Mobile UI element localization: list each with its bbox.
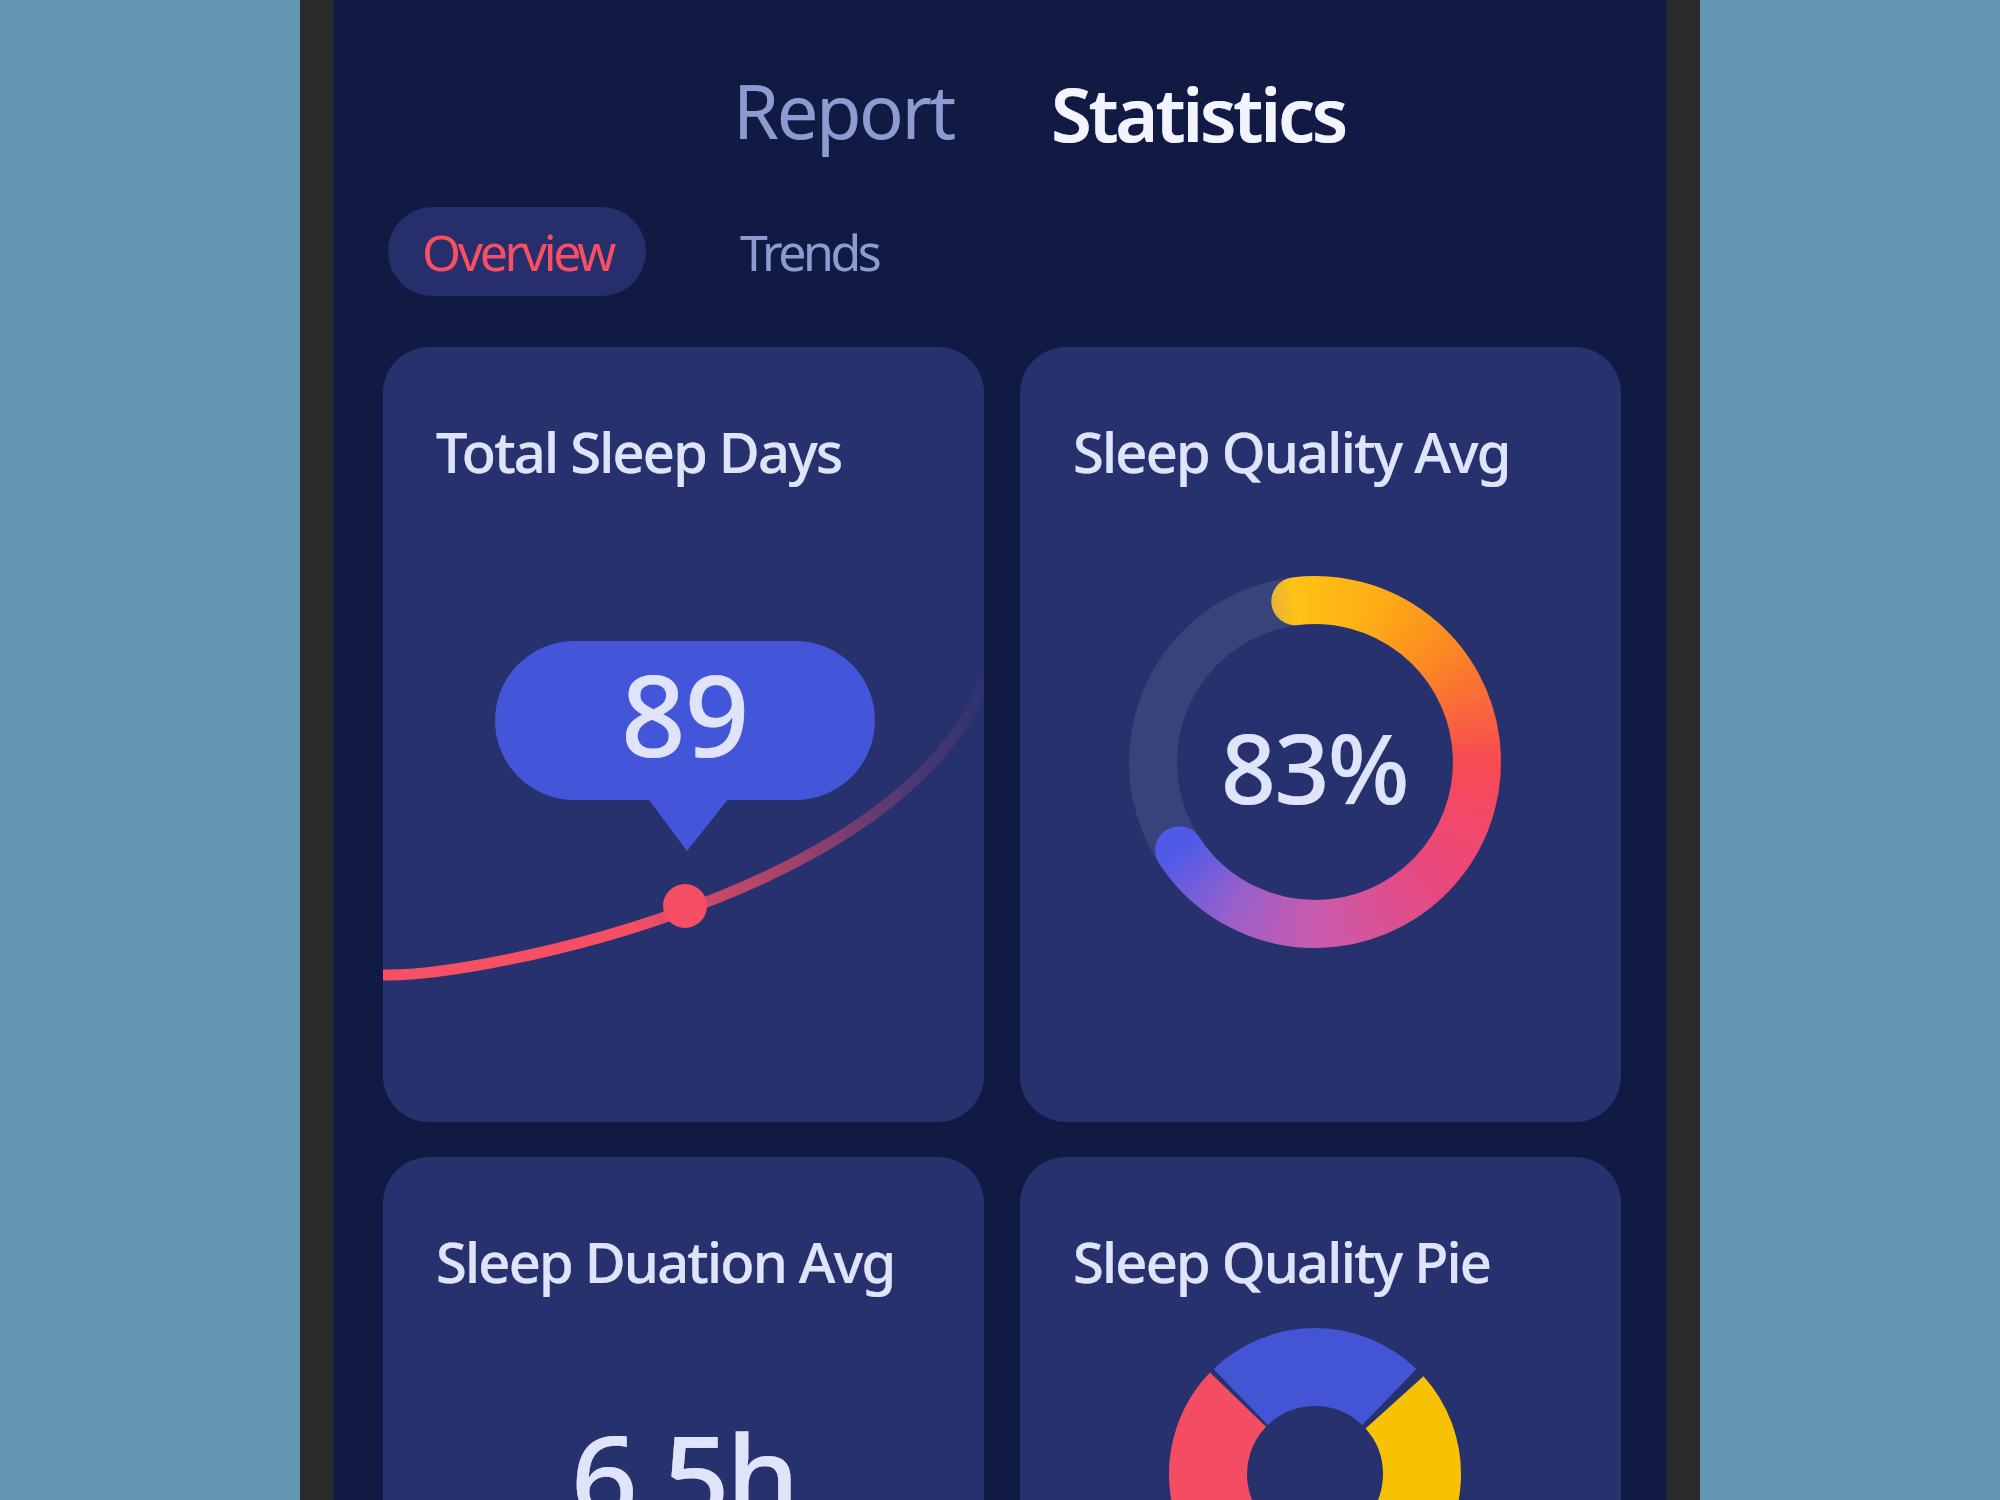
other: Sleep quality distribution pie chart	[1020, 1157, 1621, 1500]
button[interactable]: Overview	[388, 207, 646, 296]
button[interactable]: Trends	[702, 207, 917, 296]
button[interactable]: Sleep quality distribution pie chart	[1020, 1157, 1621, 1500]
other: Total sleep days trend chart, 89 days	[383, 347, 984, 1122]
other: Sleep quality average 83 percent	[1020, 347, 1621, 1122]
button[interactable]: 6.5h	[383, 1157, 984, 1500]
staticText: Statistics	[1051, 63, 1346, 164]
button[interactable]: Report	[733, 60, 954, 161]
button[interactable]: Sleep quality average 83 percent	[1020, 347, 1621, 1122]
staticText: Sleep Quality Avg	[1073, 413, 1510, 489]
staticText: Trends	[740, 218, 879, 286]
staticText: 83%	[1221, 701, 1409, 832]
staticText: Sleep Quality Pie	[1073, 1223, 1491, 1299]
staticText: Sleep Duation Avg	[436, 1223, 895, 1299]
button[interactable]: Statistics	[1051, 63, 1346, 164]
staticText: 89	[621, 636, 749, 790]
button[interactable]: Total sleep days trend chart, 89 days	[383, 347, 984, 1122]
staticText: Report	[733, 60, 954, 161]
staticText: 6.5h	[571, 1395, 797, 1500]
staticText: Total Sleep Days	[436, 413, 842, 489]
staticText: Overview	[422, 218, 613, 286]
